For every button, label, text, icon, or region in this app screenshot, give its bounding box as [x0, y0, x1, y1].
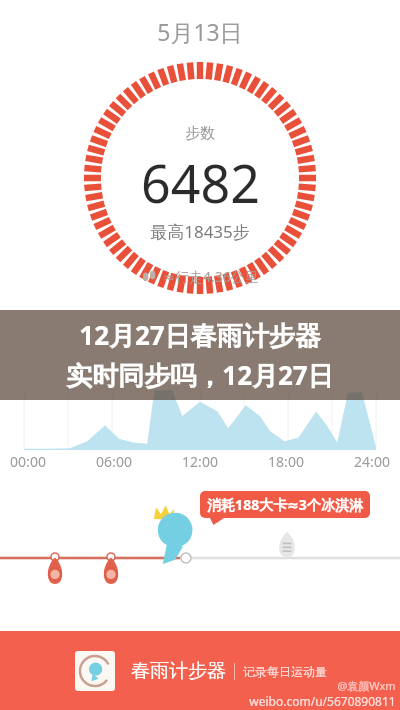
staticText: 春雨计步器 — [131, 659, 226, 683]
staticText: 00:00 — [10, 452, 46, 471]
staticText: 6482 — [141, 147, 260, 218]
staticText: 记录每日运动量 — [243, 664, 327, 679]
staticText: @袁颜Wxm — [337, 678, 396, 693]
staticText: 24:00 — [354, 452, 390, 471]
staticText: 12月27日春雨计步器 — [79, 317, 321, 353]
staticText: 12:00 — [182, 452, 218, 471]
staticText: 5月13日 — [157, 16, 243, 47]
staticText: 06:00 — [96, 452, 132, 471]
staticText: 最高18435步 — [150, 220, 250, 243]
staticText: 消耗188大卡≈3个冰淇淋 — [207, 495, 363, 514]
staticText: 步数 — [185, 124, 215, 143]
staticText: 18:00 — [268, 452, 304, 471]
button[interactable]: 春雨计步器 — [0, 631, 400, 710]
staticText: 实时同步吗，12月27日 — [66, 357, 334, 393]
staticText: weibo.com/u/5670890811 — [249, 693, 396, 709]
staticText: ≈行走4.36公里 — [163, 267, 259, 286]
